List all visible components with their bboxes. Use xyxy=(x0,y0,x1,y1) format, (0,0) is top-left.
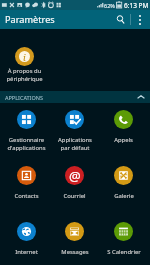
button[interactable]: Gestionnaire d'applications xyxy=(2,103,50,159)
button[interactable]: @ xyxy=(50,159,99,215)
staticText: 62% xyxy=(104,2,115,9)
staticText: S Calendrier xyxy=(107,248,141,256)
staticText: @ xyxy=(69,167,81,185)
staticText: Messages xyxy=(61,248,89,256)
button[interactable]: Appels xyxy=(99,103,148,159)
button[interactable]: APPLICATIONS xyxy=(0,91,150,103)
staticText: Appels xyxy=(114,136,133,144)
button[interactable]: Contacts xyxy=(2,159,50,215)
button[interactable]: S Calendrier xyxy=(99,215,148,265)
staticText: Courriel xyxy=(63,192,86,200)
button[interactable]: Applications par défaut xyxy=(50,103,99,159)
staticText: Applications par défaut xyxy=(58,136,92,151)
staticText: Galerie xyxy=(114,192,134,200)
staticText: Paramètres xyxy=(5,13,55,26)
staticText: i xyxy=(23,51,26,62)
staticText: Internet xyxy=(15,248,38,256)
button[interactable]: i xyxy=(1,47,47,82)
button[interactable]: More options xyxy=(131,10,148,29)
staticText: 6:13 PM xyxy=(124,1,149,10)
staticText: À propos du périphérique xyxy=(6,67,43,82)
button[interactable]: Search xyxy=(111,10,130,29)
staticText: Contacts xyxy=(14,192,39,200)
button[interactable]: Galerie xyxy=(99,159,148,215)
button[interactable]: Internet xyxy=(2,215,50,265)
button[interactable]: Messages xyxy=(50,215,99,265)
staticText: APPLICATIONS xyxy=(5,94,43,101)
staticText: Gestionnaire d'applications xyxy=(7,136,46,151)
